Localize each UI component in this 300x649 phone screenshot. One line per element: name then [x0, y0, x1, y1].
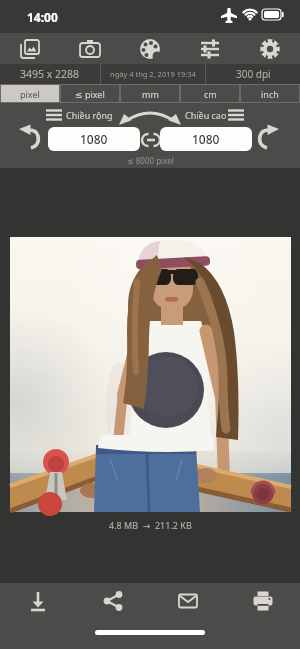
button[interactable]: [0, 33, 60, 64]
button[interactable]: [180, 33, 240, 64]
button[interactable]: [120, 33, 180, 64]
staticText: ngày 4 thg 2, 2019 19:34: [110, 69, 196, 79]
staticText: 300 dpi: [236, 67, 271, 81]
button[interactable]: 1080: [48, 127, 140, 151]
button[interactable]: pixel: [0, 84, 60, 103]
button[interactable]: [225, 583, 300, 619]
button[interactable]: mm: [120, 84, 180, 103]
staticText: cm: [204, 88, 217, 100]
staticText: 1080: [80, 131, 108, 147]
staticText: Chiều cao: [185, 109, 227, 121]
button[interactable]: cm: [180, 84, 240, 103]
button[interactable]: ≤ pixel: [60, 84, 120, 103]
staticText: Chiều rộng: [66, 109, 113, 121]
button[interactable]: 1080: [160, 127, 252, 151]
button[interactable]: [240, 33, 300, 64]
button[interactable]: [0, 583, 75, 619]
staticText: ≤ 8000 pixel: [127, 155, 174, 166]
staticText: inch: [261, 88, 279, 100]
button[interactable]: [150, 583, 225, 619]
staticText: mm: [142, 88, 159, 100]
staticText: pixel: [20, 88, 40, 100]
staticText: 3495 x 2288: [20, 67, 80, 81]
staticText: 4.8 MB → 211.2 KB: [109, 519, 192, 531]
staticText: ≤ pixel: [75, 88, 105, 100]
button[interactable]: inch: [240, 84, 300, 103]
staticText: 14:00: [27, 9, 58, 25]
button[interactable]: [75, 583, 150, 619]
button[interactable]: [60, 33, 120, 64]
staticText: 1080: [192, 131, 220, 147]
